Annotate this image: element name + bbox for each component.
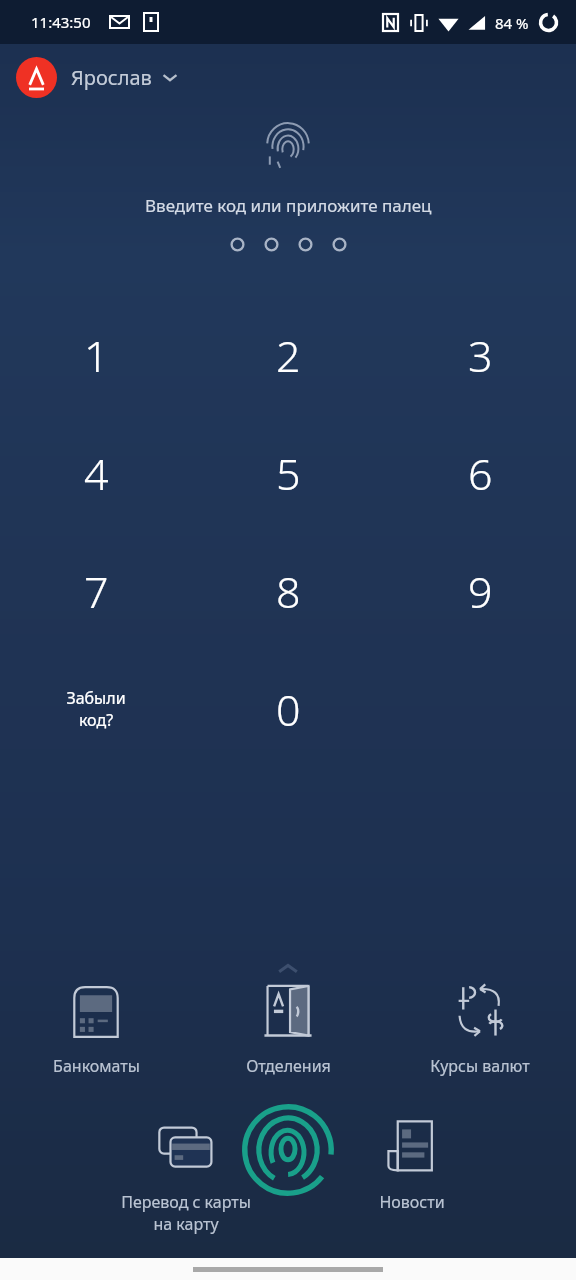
button[interactable]: 5	[192, 414, 384, 532]
staticText: 7	[84, 562, 109, 621]
staticText: 4	[84, 444, 109, 503]
staticText: 1	[84, 326, 109, 385]
staticText: 5	[276, 444, 301, 503]
button[interactable]: 3	[384, 296, 576, 414]
button[interactable]: 0	[192, 650, 384, 768]
button[interactable]: 8	[192, 532, 384, 650]
button[interactable]: 4	[0, 414, 192, 532]
staticText: Ярослав	[71, 64, 152, 91]
button[interactable]: Забыли код?	[0, 650, 192, 768]
button[interactable]: 9	[384, 532, 576, 650]
staticText: 11:43:50	[31, 12, 91, 32]
staticText: 84 %	[495, 13, 529, 33]
button[interactable]: Fingerprint unlock	[241, 1103, 335, 1197]
button[interactable]: Банкоматы	[0, 978, 192, 1080]
staticText: Перевод с карты на карту	[121, 1191, 251, 1235]
button[interactable]: Ярослав	[0, 44, 576, 110]
staticText: 6	[468, 444, 493, 503]
staticText: Банкоматы	[53, 1055, 140, 1077]
button[interactable]: 6	[384, 414, 576, 532]
staticText: 2	[276, 326, 301, 385]
staticText: 0	[276, 680, 301, 739]
button[interactable]: Перевод с карты на карту	[79, 1114, 293, 1238]
staticText: Введите код или приложите палец	[145, 194, 432, 217]
button[interactable]: 7	[0, 532, 192, 650]
staticText: 3	[468, 326, 493, 385]
button[interactable]: 2	[192, 296, 384, 414]
button[interactable]: Новости	[327, 1114, 496, 1216]
staticText: Отделения	[246, 1055, 331, 1077]
staticText: Курсы валют	[430, 1055, 530, 1077]
button[interactable]: Отделения	[192, 978, 384, 1080]
staticText: 8	[276, 562, 301, 621]
button[interactable]: 1	[0, 296, 192, 414]
staticText: 9	[468, 562, 493, 621]
staticText: Новости	[379, 1191, 445, 1213]
staticText: Забыли код?	[66, 687, 126, 731]
button[interactable]: Курсы валют	[384, 978, 576, 1080]
